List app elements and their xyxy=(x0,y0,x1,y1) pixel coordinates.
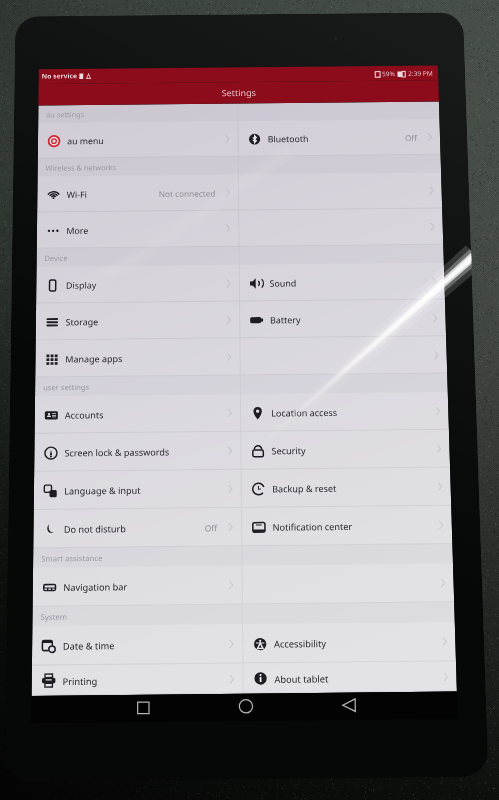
button[interactable] xyxy=(240,336,447,375)
staticText: Display xyxy=(66,279,97,291)
button[interactable]: Display xyxy=(36,265,239,303)
button[interactable]: Recents xyxy=(132,697,153,718)
staticText: Sound xyxy=(269,277,297,289)
staticText: Navigation bar xyxy=(63,580,128,593)
button[interactable]: Screen lock & passwords xyxy=(34,432,241,472)
button[interactable]: Battery xyxy=(240,299,446,338)
staticText: System xyxy=(41,611,67,622)
button[interactable]: Backup & reset xyxy=(242,467,451,508)
button[interactable]: Security xyxy=(241,430,450,470)
button[interactable] xyxy=(239,173,442,210)
button[interactable]: About tablet xyxy=(243,661,457,694)
staticText: Screen lock & passwords xyxy=(64,445,170,458)
staticText: Settings xyxy=(222,87,257,99)
button[interactable]: Language & input xyxy=(34,470,241,510)
staticText: Not connected xyxy=(159,188,216,199)
button[interactable]: Accounts xyxy=(35,394,240,434)
button[interactable]: Manage apps xyxy=(35,338,240,377)
staticText: au settings xyxy=(46,110,85,119)
button[interactable]: Accessibility xyxy=(243,622,456,663)
button[interactable]: Notification center xyxy=(242,506,452,546)
button[interactable]: Location access xyxy=(241,392,449,432)
staticText: Do not disturb xyxy=(64,522,127,535)
staticText: au menu xyxy=(67,135,104,146)
button[interactable] xyxy=(243,563,454,604)
staticText: user settings xyxy=(43,382,90,392)
button[interactable]: Wi-Fi xyxy=(37,174,238,212)
staticText: Printing xyxy=(62,674,98,687)
staticText: Location access xyxy=(271,406,337,418)
button[interactable] xyxy=(239,208,443,247)
button[interactable]: Do not disturb xyxy=(33,508,241,548)
staticText: Accessibility xyxy=(274,637,326,650)
button[interactable]: More xyxy=(37,210,238,249)
button[interactable]: Bluetooth xyxy=(238,119,441,157)
staticText: 59% xyxy=(382,70,396,78)
staticText: Manage apps xyxy=(65,352,123,364)
staticText: About tablet xyxy=(274,672,329,685)
staticText: Wi-Fi xyxy=(67,188,87,200)
staticText: Notification center xyxy=(272,520,353,533)
button[interactable]: Storage xyxy=(36,301,239,340)
staticText: Date & time xyxy=(63,639,115,652)
staticText: Off xyxy=(405,132,418,143)
staticText: Smart assistance xyxy=(41,553,103,564)
staticText: Battery xyxy=(270,313,301,325)
button[interactable]: Sound xyxy=(240,263,445,301)
staticText: Bluetooth xyxy=(268,133,309,144)
staticText: Off xyxy=(205,522,218,533)
staticText: Accounts xyxy=(65,408,104,421)
button[interactable]: au menu xyxy=(38,121,238,159)
staticText: More xyxy=(66,224,89,236)
button[interactable]: Navigation bar xyxy=(33,566,242,607)
button[interactable]: Printing xyxy=(32,663,243,696)
staticText: Storage xyxy=(66,315,98,327)
button[interactable]: Back xyxy=(338,695,359,716)
staticText: Security xyxy=(272,444,306,456)
button[interactable]: Date & time xyxy=(32,624,242,666)
staticText: Language & input xyxy=(64,484,141,496)
staticText: Backup & reset xyxy=(272,482,337,494)
staticText: Wireless & networks xyxy=(45,163,117,173)
staticText: No service xyxy=(42,72,77,81)
button[interactable]: Home xyxy=(235,696,256,717)
staticText: 2:39 PM xyxy=(408,69,433,78)
staticText: Device xyxy=(44,253,68,263)
